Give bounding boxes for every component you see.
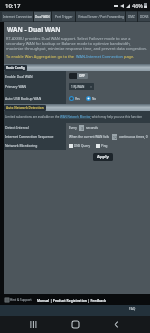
button[interactable]: DMZ — [126, 12, 137, 21]
staticText: Manual | Product Registration | Feedback — [37, 298, 107, 302]
staticText: Apply — [97, 154, 109, 160]
staticText: Basic Config — [6, 66, 25, 70]
button[interactable]: 3 — [79, 125, 84, 131]
button[interactable]: 12 — [112, 134, 117, 140]
button[interactable]: Manual | Product Registration | Feedback — [37, 298, 107, 302]
button[interactable]: Home — [67, 316, 84, 333]
staticText: continuous times, 0 — [119, 135, 148, 139]
button[interactable]: Back — [108, 316, 125, 333]
staticText: RT-AX88U provides Dual WAN support. Sele… — [6, 36, 149, 51]
staticText: Port Trigger — [55, 15, 73, 19]
staticText: FAQ — [129, 306, 136, 310]
staticText: Auto USB Backup WAN — [5, 96, 42, 101]
staticText: Virtual Server / Port Forwarding — [78, 15, 124, 19]
staticText: page. — [123, 54, 135, 59]
staticText: Detect Interval — [5, 125, 29, 130]
button[interactable]: DDNS — [138, 12, 150, 21]
staticText: To enable Wan Aggregation go to the — [6, 54, 76, 59]
staticText: Yes — [75, 97, 80, 101]
button[interactable]: Port Trigger — [52, 12, 75, 21]
button[interactable]: Apply — [93, 153, 113, 161]
staticText: When the current WAN fails — [69, 135, 110, 139]
staticText: WAN - Dual WAN — [7, 25, 61, 34]
button[interactable]: Auto USB Backup WAN — [0, 92, 150, 104]
staticText: DMZ — [128, 15, 135, 19]
button[interactable]: Network Monitoring — [0, 141, 150, 150]
staticText: 46% — [132, 2, 143, 9]
staticText: 3 — [81, 126, 83, 131]
staticText: Network Monitoring — [5, 143, 38, 148]
button[interactable]: FAQ — [129, 306, 136, 310]
staticText: Dual WAN — [35, 15, 50, 19]
staticText: 1 RJ-WAN — [71, 85, 85, 89]
button[interactable]: 1 RJ-WAN — [69, 83, 94, 90]
staticText: Internet Connection — [3, 15, 33, 19]
staticText: 10:17 — [5, 2, 21, 10]
button[interactable]: DNS Query — [69, 144, 91, 148]
button[interactable]: Primary WAN — [0, 81, 150, 92]
staticText: Ping — [101, 144, 108, 148]
staticText: Every — [69, 126, 77, 130]
button[interactable]: Enable Dual WAN — [69, 73, 88, 79]
button[interactable]: Hint & Support — [4, 297, 33, 303]
staticText: Enable Dual WAN — [5, 74, 33, 79]
staticText: No — [92, 97, 97, 101]
button[interactable]: Ping — [96, 144, 108, 148]
button[interactable]: Internet Connection — [2, 12, 33, 21]
staticText: OFF — [79, 74, 86, 78]
staticText: Primary WAN — [5, 84, 27, 89]
button[interactable]: Recents — [25, 316, 42, 333]
staticText: Limited subsections are available on the… — [5, 115, 149, 119]
staticText: Auto Network Detection — [6, 106, 44, 110]
staticText: DNS Query — [74, 144, 91, 148]
button[interactable]: No — [86, 96, 97, 101]
staticText: Internet Connection Sequence — [5, 134, 54, 139]
button[interactable]: Dual WAN — [34, 12, 51, 21]
staticText: DDNS — [140, 15, 149, 19]
staticText: 12 — [113, 135, 117, 140]
button[interactable]: Internet Connection Sequence — [0, 132, 150, 141]
button[interactable]: Enable Dual WAN — [0, 71, 150, 81]
button[interactable]: Detect Interval — [0, 123, 150, 132]
staticText: seconds — [86, 126, 98, 130]
button[interactable]: Yes — [69, 96, 80, 101]
staticText: Hint & Support — [10, 298, 32, 302]
button[interactable]: Virtual Server / Port Forwarding — [76, 12, 125, 21]
staticText: WAN-Internet Connection — [76, 54, 123, 59]
